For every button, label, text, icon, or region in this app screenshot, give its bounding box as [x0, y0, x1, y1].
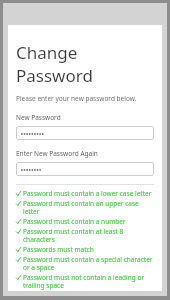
staticText: Password must contain an upper case lett…: [23, 199, 154, 216]
staticText: Please enter your new password below.: [16, 94, 137, 103]
staticText: Change Password: [16, 41, 154, 87]
staticText: New Password: [16, 113, 61, 122]
staticText: Password must contain a number: [23, 217, 126, 226]
other: Requirement met: [16, 201, 21, 206]
other: Requirement met: [16, 257, 21, 262]
button[interactable]: [16, 126, 154, 140]
button[interactable]: [16, 162, 154, 176]
staticText: Password must contain a lower case lette…: [23, 189, 152, 198]
other: Requirement met: [16, 275, 21, 280]
other: Requirement met: [16, 247, 21, 252]
staticText: Passwords must match: [23, 245, 94, 254]
other: Requirement met: [16, 229, 21, 234]
staticText: Enter New Password Again: [16, 149, 98, 158]
staticText: Password must not contain a leading or t…: [23, 273, 154, 290]
other: Requirement met: [16, 219, 21, 224]
staticText: Password must contain at least 8 charact…: [23, 227, 154, 244]
staticText: Password must contain a special characte…: [23, 255, 154, 272]
other: Requirement met: [16, 191, 21, 196]
